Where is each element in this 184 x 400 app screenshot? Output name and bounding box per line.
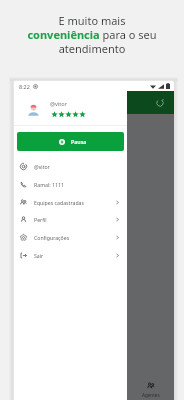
button[interactable]: Ramal: 1111	[14, 175, 127, 193]
button[interactable]: @vitor	[14, 157, 127, 175]
staticText: Sair	[34, 252, 44, 259]
staticText: @vitor	[34, 163, 50, 170]
staticText: Perfil	[34, 216, 47, 223]
staticText: Agentes	[142, 392, 160, 398]
staticText: @vitor	[50, 100, 68, 108]
staticText: Ramal: 1111	[34, 181, 64, 188]
staticText: Configurações	[34, 234, 70, 241]
button[interactable]: Equipes cadastradas	[14, 193, 127, 211]
button[interactable]: Sair	[14, 246, 127, 264]
button[interactable]: Agentes	[136, 382, 166, 398]
button[interactable]: Atualizar	[154, 97, 166, 109]
button[interactable]: Perfil	[14, 210, 127, 228]
staticText: E muito mais conveniência para o seu ate…	[0, 13, 184, 56]
staticText: Equipes cadastradas	[34, 199, 84, 206]
staticText: Pausa	[71, 138, 87, 145]
staticText: 8:22	[19, 83, 30, 90]
button[interactable]: Configurações	[14, 228, 127, 246]
button[interactable]: Pausa	[17, 132, 124, 151]
